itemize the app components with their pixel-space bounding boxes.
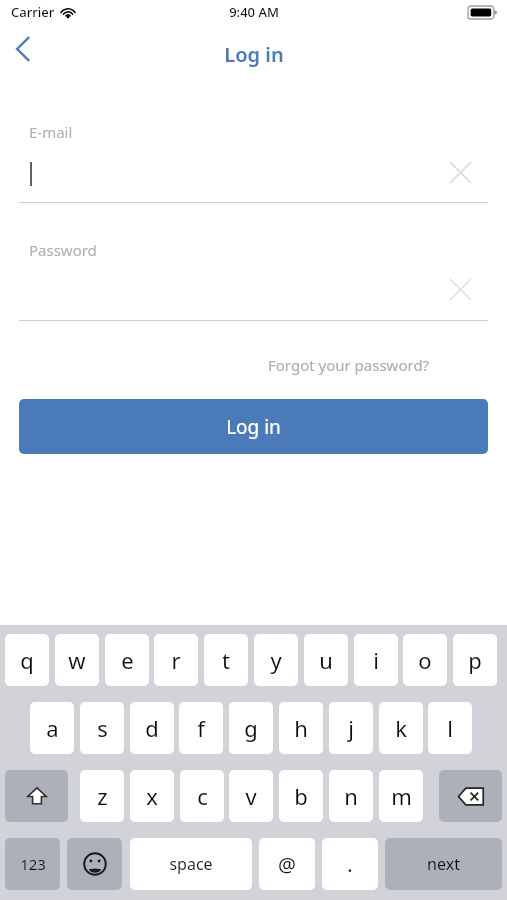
staticText: u xyxy=(319,645,333,675)
staticText: i xyxy=(373,645,379,675)
staticText: v xyxy=(245,781,257,811)
button[interactable]: Clear e-mail xyxy=(438,152,482,192)
button[interactable]: Backspace xyxy=(439,770,502,822)
button[interactable]: m xyxy=(379,770,423,822)
staticText: r xyxy=(171,645,181,675)
button[interactable]: . xyxy=(322,838,378,890)
staticText: . xyxy=(347,851,353,878)
staticText: Carrier xyxy=(11,3,55,21)
button[interactable]: w xyxy=(55,634,99,686)
button[interactable]: t xyxy=(204,634,248,686)
staticText: j xyxy=(348,713,354,743)
staticText: Password xyxy=(29,240,97,260)
staticText: 123 xyxy=(20,854,46,874)
staticText: o xyxy=(418,645,432,675)
staticText: t xyxy=(222,645,230,675)
staticText: next xyxy=(427,853,460,875)
button[interactable]: e xyxy=(105,634,149,686)
button[interactable]: s xyxy=(80,702,124,754)
button[interactable]: l xyxy=(428,702,472,754)
staticText: space xyxy=(169,853,213,875)
staticText: g xyxy=(244,713,258,743)
button[interactable]: o xyxy=(403,634,447,686)
button[interactable]: Shift xyxy=(5,770,68,822)
button[interactable]: d xyxy=(130,702,174,754)
button[interactable]: i xyxy=(354,634,398,686)
staticText: E-mail xyxy=(29,122,73,142)
staticText: s xyxy=(97,713,108,743)
button[interactable]: x xyxy=(130,770,174,822)
button[interactable]: @ xyxy=(259,838,315,890)
staticText: Log in xyxy=(226,414,281,440)
button[interactable]: v xyxy=(229,770,273,822)
button[interactable]: Back xyxy=(0,28,54,78)
staticText: a xyxy=(46,713,59,743)
staticText: 9:40 AM xyxy=(229,3,279,21)
button[interactable]: z xyxy=(80,770,124,822)
staticText: x xyxy=(146,781,158,811)
button[interactable]: j xyxy=(329,702,373,754)
staticText: @ xyxy=(278,851,296,878)
staticText: b xyxy=(294,781,308,811)
staticText: z xyxy=(97,781,108,811)
staticText: q xyxy=(20,645,34,675)
button[interactable]: c xyxy=(180,770,224,822)
staticText: k xyxy=(395,713,407,743)
staticText: y xyxy=(270,645,282,675)
staticText: Forgot your password? xyxy=(268,355,430,375)
button[interactable]: r xyxy=(154,634,198,686)
staticText: c xyxy=(197,781,208,811)
button[interactable]: b xyxy=(279,770,323,822)
button[interactable]: next xyxy=(385,838,502,890)
staticText: Log in xyxy=(224,41,284,68)
button[interactable]: f xyxy=(179,702,223,754)
staticText: m xyxy=(391,781,412,811)
staticText: e xyxy=(121,645,134,675)
button[interactable]: n xyxy=(329,770,373,822)
button[interactable]: space xyxy=(130,838,252,890)
button[interactable]: h xyxy=(279,702,323,754)
button[interactable]: Clear password xyxy=(438,269,482,309)
button[interactable]: Emoji xyxy=(67,838,122,890)
button[interactable]: k xyxy=(379,702,423,754)
staticText: n xyxy=(344,781,358,811)
staticText: w xyxy=(68,645,86,675)
button[interactable]: y xyxy=(254,634,298,686)
button[interactable]: p xyxy=(453,634,497,686)
button[interactable]: 123 xyxy=(5,838,60,890)
button[interactable]: q xyxy=(5,634,49,686)
button[interactable]: u xyxy=(304,634,348,686)
staticText: d xyxy=(145,713,159,743)
staticText: p xyxy=(468,645,482,675)
staticText: l xyxy=(447,713,453,743)
button[interactable]: Forgot your password? xyxy=(268,352,430,378)
staticText: f xyxy=(197,713,205,743)
staticText: h xyxy=(294,713,308,743)
button[interactable]: a xyxy=(30,702,74,754)
button[interactable]: g xyxy=(229,702,273,754)
button[interactable]: Log in xyxy=(19,399,488,454)
